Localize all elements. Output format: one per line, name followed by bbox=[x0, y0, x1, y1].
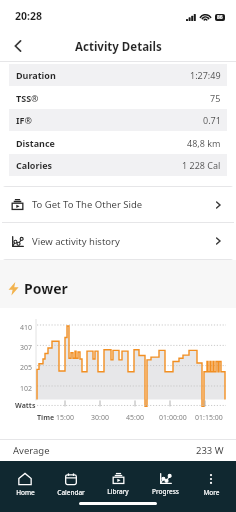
button[interactable]: Distance bbox=[9, 131, 227, 154]
staticText: 307 bbox=[20, 343, 33, 353]
staticText: Power bbox=[24, 279, 68, 298]
staticText: Time bbox=[37, 413, 55, 423]
staticText: 48,8 km bbox=[187, 137, 221, 149]
staticText: More bbox=[203, 488, 220, 497]
staticText: Watts bbox=[15, 401, 36, 411]
staticText: 01:00:00 bbox=[159, 413, 187, 423]
staticText: 30:00 bbox=[91, 413, 109, 423]
staticText: TSS® bbox=[16, 92, 39, 104]
button[interactable]: Average bbox=[0, 440, 236, 461]
staticText: 1:27:49 bbox=[190, 69, 221, 81]
staticText: Activity Details bbox=[75, 39, 162, 55]
button[interactable]: Calendar bbox=[49, 466, 93, 502]
button[interactable]: To Get To The Other Side bbox=[2, 187, 234, 222]
button[interactable]: Progress bbox=[143, 466, 187, 502]
button[interactable]: Duration bbox=[9, 64, 227, 86]
button[interactable]: TSS® bbox=[9, 86, 227, 109]
staticText: Home bbox=[16, 488, 35, 497]
staticText: Distance bbox=[16, 137, 55, 149]
staticText: 86 bbox=[217, 14, 223, 21]
staticText: 45:00 bbox=[126, 413, 144, 423]
staticText: Calories bbox=[16, 159, 53, 171]
button[interactable]: More bbox=[189, 466, 233, 502]
button[interactable]: Back bbox=[0, 31, 30, 61]
staticText: IF® bbox=[16, 114, 32, 126]
staticText: View activity history bbox=[32, 235, 120, 248]
button[interactable]: Calories bbox=[9, 154, 227, 176]
button[interactable]: Library bbox=[96, 466, 140, 502]
staticText: Library bbox=[107, 487, 129, 496]
staticText: 0.71 bbox=[203, 114, 221, 126]
staticText: 01:15:00 bbox=[195, 413, 223, 423]
staticText: 1 228 Cal bbox=[182, 159, 221, 171]
button[interactable]: View activity history bbox=[2, 223, 234, 259]
staticText: 75 bbox=[210, 92, 221, 104]
button[interactable]: IF® bbox=[9, 109, 227, 131]
staticText: 20:28 bbox=[15, 9, 42, 23]
staticText: Average bbox=[13, 444, 50, 457]
staticText: 410 bbox=[20, 323, 33, 333]
staticText: Duration bbox=[16, 69, 56, 81]
staticText: Progress bbox=[152, 487, 179, 496]
button[interactable]: Home bbox=[3, 466, 47, 502]
staticText: Calendar bbox=[57, 488, 85, 497]
staticText: 102 bbox=[20, 384, 33, 394]
staticText: 15:00 bbox=[56, 413, 74, 423]
staticText: 205 bbox=[20, 363, 33, 373]
staticText: 233 W bbox=[196, 444, 224, 457]
staticText: To Get To The Other Side bbox=[32, 198, 143, 211]
